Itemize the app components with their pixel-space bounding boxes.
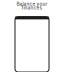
staticText: finances: [21, 5, 42, 11]
staticText: Balance your: [16, 1, 47, 7]
